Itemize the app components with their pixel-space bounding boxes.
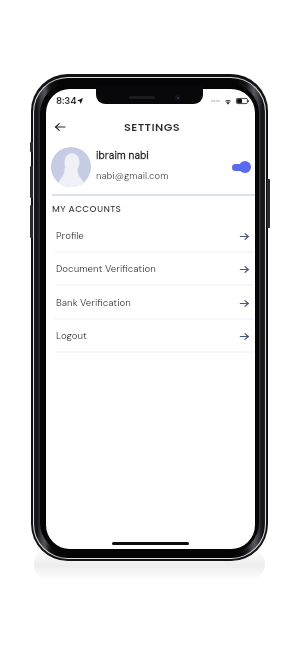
staticText: SETTINGS (124, 119, 181, 135)
staticText: Profile (56, 229, 84, 241)
button[interactable]: Bank Verification (46, 286, 255, 320)
button[interactable]: ibraim nabi (46, 141, 255, 193)
button[interactable]: Document Verification (46, 252, 255, 286)
staticText: Bank Verification (56, 296, 131, 308)
button[interactable]: Notifications toggle (229, 157, 251, 177)
staticText: ibraim nabi (96, 149, 149, 162)
button[interactable]: Back (48, 115, 71, 138)
button[interactable]: Logout (46, 319, 255, 353)
button[interactable]: Profile (46, 219, 255, 253)
staticText: 8:34 (56, 94, 77, 107)
staticText: nabi@gmail.com (96, 170, 169, 182)
staticText: Document Verification (56, 262, 156, 274)
staticText: Logout (56, 329, 87, 341)
staticText: MY ACCOUNTS (52, 203, 122, 215)
